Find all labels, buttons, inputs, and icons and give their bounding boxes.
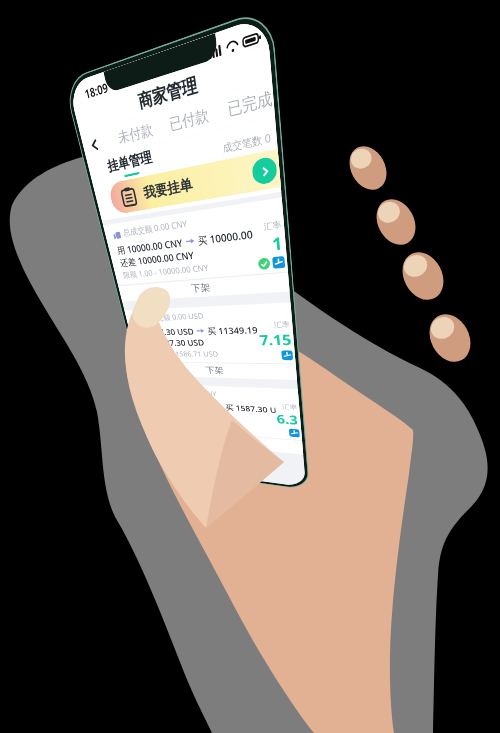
staticText: 下架: [205, 365, 224, 376]
button[interactable]: 总成交额 0.00 CNY: [103, 197, 290, 301]
staticText: 买 1587.30 USD: [224, 402, 276, 415]
staticText: 汇率: [273, 320, 291, 330]
other: Go: [251, 155, 278, 186]
button[interactable]: 未付款: [116, 119, 154, 147]
button[interactable]: 我要挂单: [107, 149, 281, 215]
button[interactable]: 总成交额 0.00 USD: [124, 302, 297, 380]
button[interactable]: 已完成: [226, 87, 273, 120]
staticText: 总成交额 0.00 CNY: [122, 218, 189, 239]
staticText: 用 10000.00 CNY: [116, 235, 184, 256]
button[interactable]: 已付款: [168, 104, 210, 135]
button[interactable]: 下架: [118, 273, 289, 302]
staticText: 下架: [190, 281, 211, 295]
staticText: 挂单管理: [106, 147, 153, 175]
button[interactable]: 总成交额 0.00 CNY: [142, 383, 303, 455]
staticText: 还差 1587.30 USD: [138, 336, 205, 348]
staticText: 限额 1.00 - 1586.71 USD: [141, 349, 220, 359]
staticText: 7.15: [258, 329, 292, 349]
button[interactable]: 下架: [137, 362, 297, 380]
staticText: 汇率: [263, 219, 282, 233]
staticText: 还差 10000.00 CNY: [119, 248, 195, 268]
staticText: 汇率: [282, 403, 298, 412]
staticText: 成交笔数 0: [222, 130, 272, 157]
staticText: 总成交额 0.00 CNY: [159, 387, 218, 399]
staticText: 已完成: [226, 87, 273, 120]
staticText: 18:09: [83, 78, 110, 102]
staticText: 总成交额 0.00 USD: [142, 311, 205, 324]
staticText: 限额 1.00 - 10000.00 CNY: [122, 262, 210, 281]
staticText: 1: [271, 230, 284, 256]
staticText: 商家管理: [136, 73, 199, 113]
button[interactable]: 挂单管理: [106, 147, 154, 180]
button[interactable]: 下架: [154, 428, 303, 454]
staticText: 我要挂单: [142, 175, 194, 202]
staticText: 6.3: [276, 410, 299, 428]
staticText: 买 10000.00 CNY: [197, 226, 256, 247]
button[interactable]: Back: [80, 127, 108, 161]
staticText: 未付款: [116, 119, 154, 147]
staticText: 用 1587.30 USD: [136, 325, 195, 337]
staticText: 买 11349.19 CNY: [206, 323, 259, 336]
staticText: 下架: [218, 435, 236, 446]
staticText: 已付款: [168, 104, 210, 135]
